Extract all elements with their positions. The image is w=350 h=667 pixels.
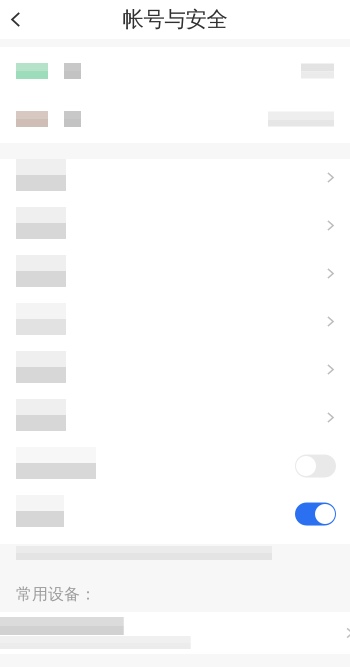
- button[interactable]: Back: [0, 0, 46, 39]
- button[interactable]: [0, 298, 350, 346]
- button[interactable]: [0, 394, 350, 442]
- button[interactable]: [0, 159, 350, 202]
- button[interactable]: [0, 612, 350, 654]
- staticText: 帐号与安全: [122, 6, 227, 33]
- button[interactable]: [0, 95, 350, 143]
- button[interactable]: [0, 202, 350, 250]
- button[interactable]: [0, 346, 350, 394]
- staticText: 常用设备：: [16, 584, 96, 604]
- button[interactable]: [0, 250, 350, 298]
- button[interactable]: [0, 490, 350, 538]
- button[interactable]: [0, 47, 350, 95]
- button[interactable]: [0, 442, 350, 490]
